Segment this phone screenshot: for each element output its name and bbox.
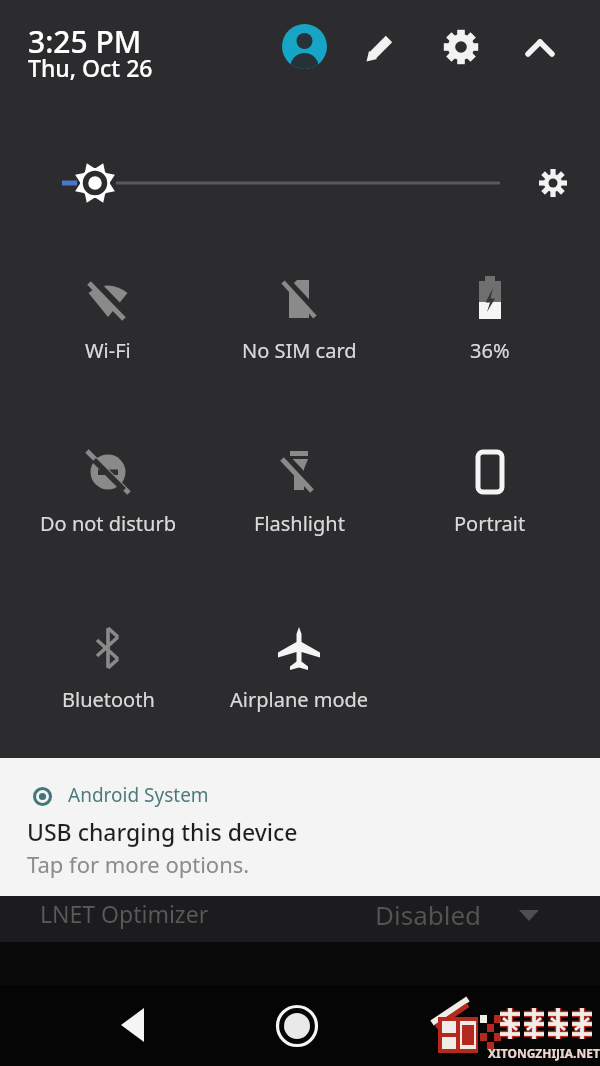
staticText: 3:25 PM xyxy=(28,21,142,62)
button[interactable] xyxy=(110,1001,158,1049)
staticText: Android System xyxy=(68,782,209,808)
staticText: No SIM card xyxy=(242,337,357,364)
button[interactable]: Bluetooth xyxy=(28,624,188,736)
button[interactable] xyxy=(273,1002,321,1050)
button[interactable] xyxy=(441,27,481,67)
staticText: Portrait xyxy=(454,510,526,537)
staticText: Flashlight xyxy=(254,510,345,537)
staticText: Airplane mode xyxy=(230,686,369,713)
button[interactable]: Flashlight xyxy=(219,448,379,560)
staticText: Disabled xyxy=(375,897,482,932)
staticText: Wi-Fi xyxy=(85,337,131,364)
staticText: Bluetooth xyxy=(62,686,155,713)
button[interactable]: Do not disturb xyxy=(28,448,188,560)
staticText: 36% xyxy=(470,337,510,364)
button[interactable]: No SIM card xyxy=(219,275,379,387)
button[interactable]: Airplane mode xyxy=(219,624,379,736)
button[interactable]: Android System xyxy=(0,758,600,896)
button[interactable] xyxy=(363,29,399,65)
staticText: Thu, Oct 26 xyxy=(28,52,153,83)
staticText: Tap for more options. xyxy=(27,849,250,879)
staticText: Do not disturb xyxy=(40,510,176,537)
staticText: USB charging this device xyxy=(27,816,298,847)
staticText: LNET Optimizer xyxy=(40,898,209,929)
button[interactable]: Portrait xyxy=(410,448,570,560)
button[interactable]: 36% xyxy=(410,275,570,387)
button[interactable] xyxy=(282,24,327,69)
button[interactable] xyxy=(522,30,558,66)
button[interactable]: Wi-Fi xyxy=(28,275,188,387)
staticText: XITONGZHIJIA.NET xyxy=(488,1045,600,1061)
